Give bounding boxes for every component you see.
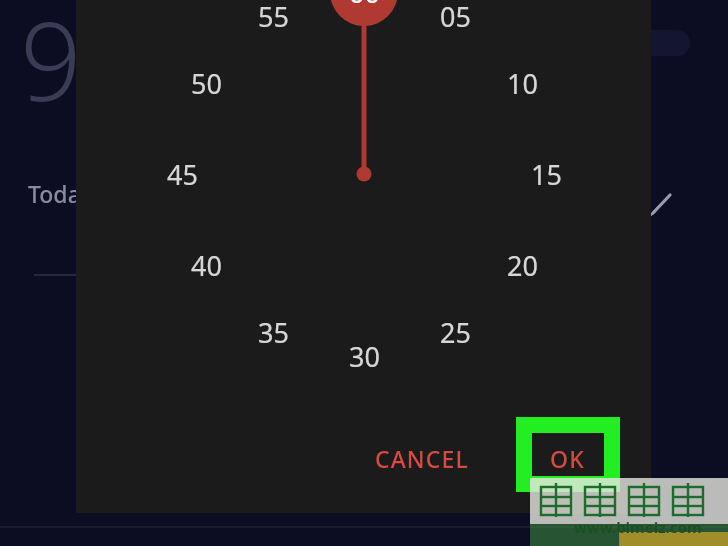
button[interactable]: CANCEL	[352, 436, 492, 480]
button[interactable]: OK	[522, 436, 612, 480]
staticText: Today	[28, 178, 93, 209]
staticText: 25	[440, 314, 471, 351]
button[interactable]: 45	[154, 154, 210, 194]
staticText: 40	[191, 247, 222, 284]
staticText: 45	[167, 156, 198, 193]
staticText: 20	[507, 247, 538, 284]
staticText: www.bimeiz.com	[574, 517, 702, 537]
staticText: 10	[507, 65, 538, 102]
staticText: 15	[531, 156, 562, 193]
button[interactable]: 55	[245, 0, 301, 36]
button[interactable]: 30	[336, 336, 392, 376]
staticText: 35	[258, 314, 289, 351]
staticText: CANCEL	[375, 443, 469, 474]
button[interactable]: 25	[427, 312, 483, 352]
staticText: 05	[440, 0, 471, 35]
staticText: 55	[258, 0, 289, 35]
button[interactable]	[620, 30, 690, 56]
button[interactable]: Edit	[648, 186, 678, 216]
button[interactable]: 00	[336, 0, 392, 12]
staticText: OK	[550, 443, 585, 474]
button[interactable]: 05	[427, 0, 483, 36]
button[interactable]: 15	[518, 154, 574, 194]
staticText: 50	[191, 65, 222, 102]
button[interactable]: 10	[494, 63, 550, 103]
staticText: 30	[349, 338, 380, 375]
button[interactable]: 50	[178, 63, 234, 103]
staticText: 00	[349, 0, 380, 11]
staticText: 9	[20, 0, 82, 106]
button[interactable]: 20	[494, 245, 550, 285]
button[interactable]: 35	[245, 312, 301, 352]
button[interactable]: 40	[178, 245, 234, 285]
